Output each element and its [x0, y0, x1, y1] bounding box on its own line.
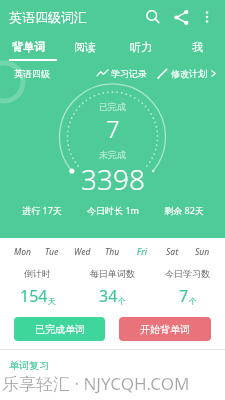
staticText: 阅读: [74, 40, 96, 54]
staticText: Wed: [74, 246, 91, 258]
staticText: 英语四级词汇: [9, 9, 87, 25]
staticText: 7: [106, 112, 120, 145]
button[interactable]: Thu: [97, 246, 127, 258]
staticText: 7: [179, 285, 189, 307]
staticText: 154: [20, 285, 48, 307]
button[interactable]: Fri: [127, 246, 157, 258]
staticText: Sat: [166, 246, 179, 258]
staticText: 今日学习数: [165, 268, 210, 279]
button[interactable]: Tue: [37, 246, 67, 258]
button[interactable]: 已完成单词: [14, 317, 105, 341]
staticText: Sun: [195, 246, 210, 258]
staticText: 未完成: [99, 149, 126, 160]
button[interactable]: 修改计划: [157, 68, 217, 79]
button[interactable]: 背单词: [0, 34, 57, 59]
staticText: 已完成: [99, 101, 126, 112]
staticText: 背单词: [12, 40, 45, 54]
staticText: Tue: [45, 246, 59, 258]
staticText: 个: [189, 296, 197, 306]
staticText: 乐享轻汇 · NJYCQH.COM: [2, 372, 190, 395]
staticText: 听力: [130, 40, 152, 54]
staticText: 天: [48, 296, 56, 306]
button[interactable]: 开始背单词: [119, 317, 211, 341]
staticText: 每日单词数: [90, 268, 135, 279]
staticText: 3398: [81, 160, 145, 198]
staticText: 进行 17天: [22, 204, 62, 216]
button[interactable]: 每日单词数: [75, 268, 150, 307]
button[interactable]: 今日学习数: [150, 268, 225, 307]
button[interactable]: 学习记录: [97, 68, 147, 79]
button[interactable]: Sun: [187, 246, 217, 258]
staticText: 34: [99, 285, 118, 307]
staticText: 个: [118, 296, 126, 306]
staticText: 剩余 82天: [164, 204, 204, 216]
staticText: 学习记录: [111, 68, 147, 79]
button[interactable]: Sat: [157, 246, 187, 258]
button[interactable]: 倒计时: [0, 268, 75, 307]
button[interactable]: Wed: [67, 246, 97, 258]
button[interactable]: 阅读: [57, 34, 113, 59]
staticText: Mon: [14, 246, 32, 258]
button[interactable]: Mon: [8, 246, 37, 258]
button[interactable]: 听力: [113, 34, 169, 59]
button[interactable]: Share: [167, 3, 195, 31]
staticText: 开始背单词: [140, 323, 190, 336]
button[interactable]: Search: [139, 3, 167, 31]
button[interactable]: 我: [169, 34, 225, 59]
staticText: 英语四级: [14, 68, 50, 79]
button[interactable]: More options: [195, 5, 219, 29]
staticText: Fri: [137, 246, 147, 258]
staticText: 修改计划: [171, 68, 207, 79]
staticText: Thu: [105, 246, 120, 258]
staticText: 今日时长 1m: [87, 204, 139, 216]
staticText: 已完成单词: [35, 323, 85, 336]
staticText: 单词复习: [9, 359, 49, 372]
staticText: 我: [192, 40, 203, 54]
staticText: 倒计时: [24, 268, 51, 279]
